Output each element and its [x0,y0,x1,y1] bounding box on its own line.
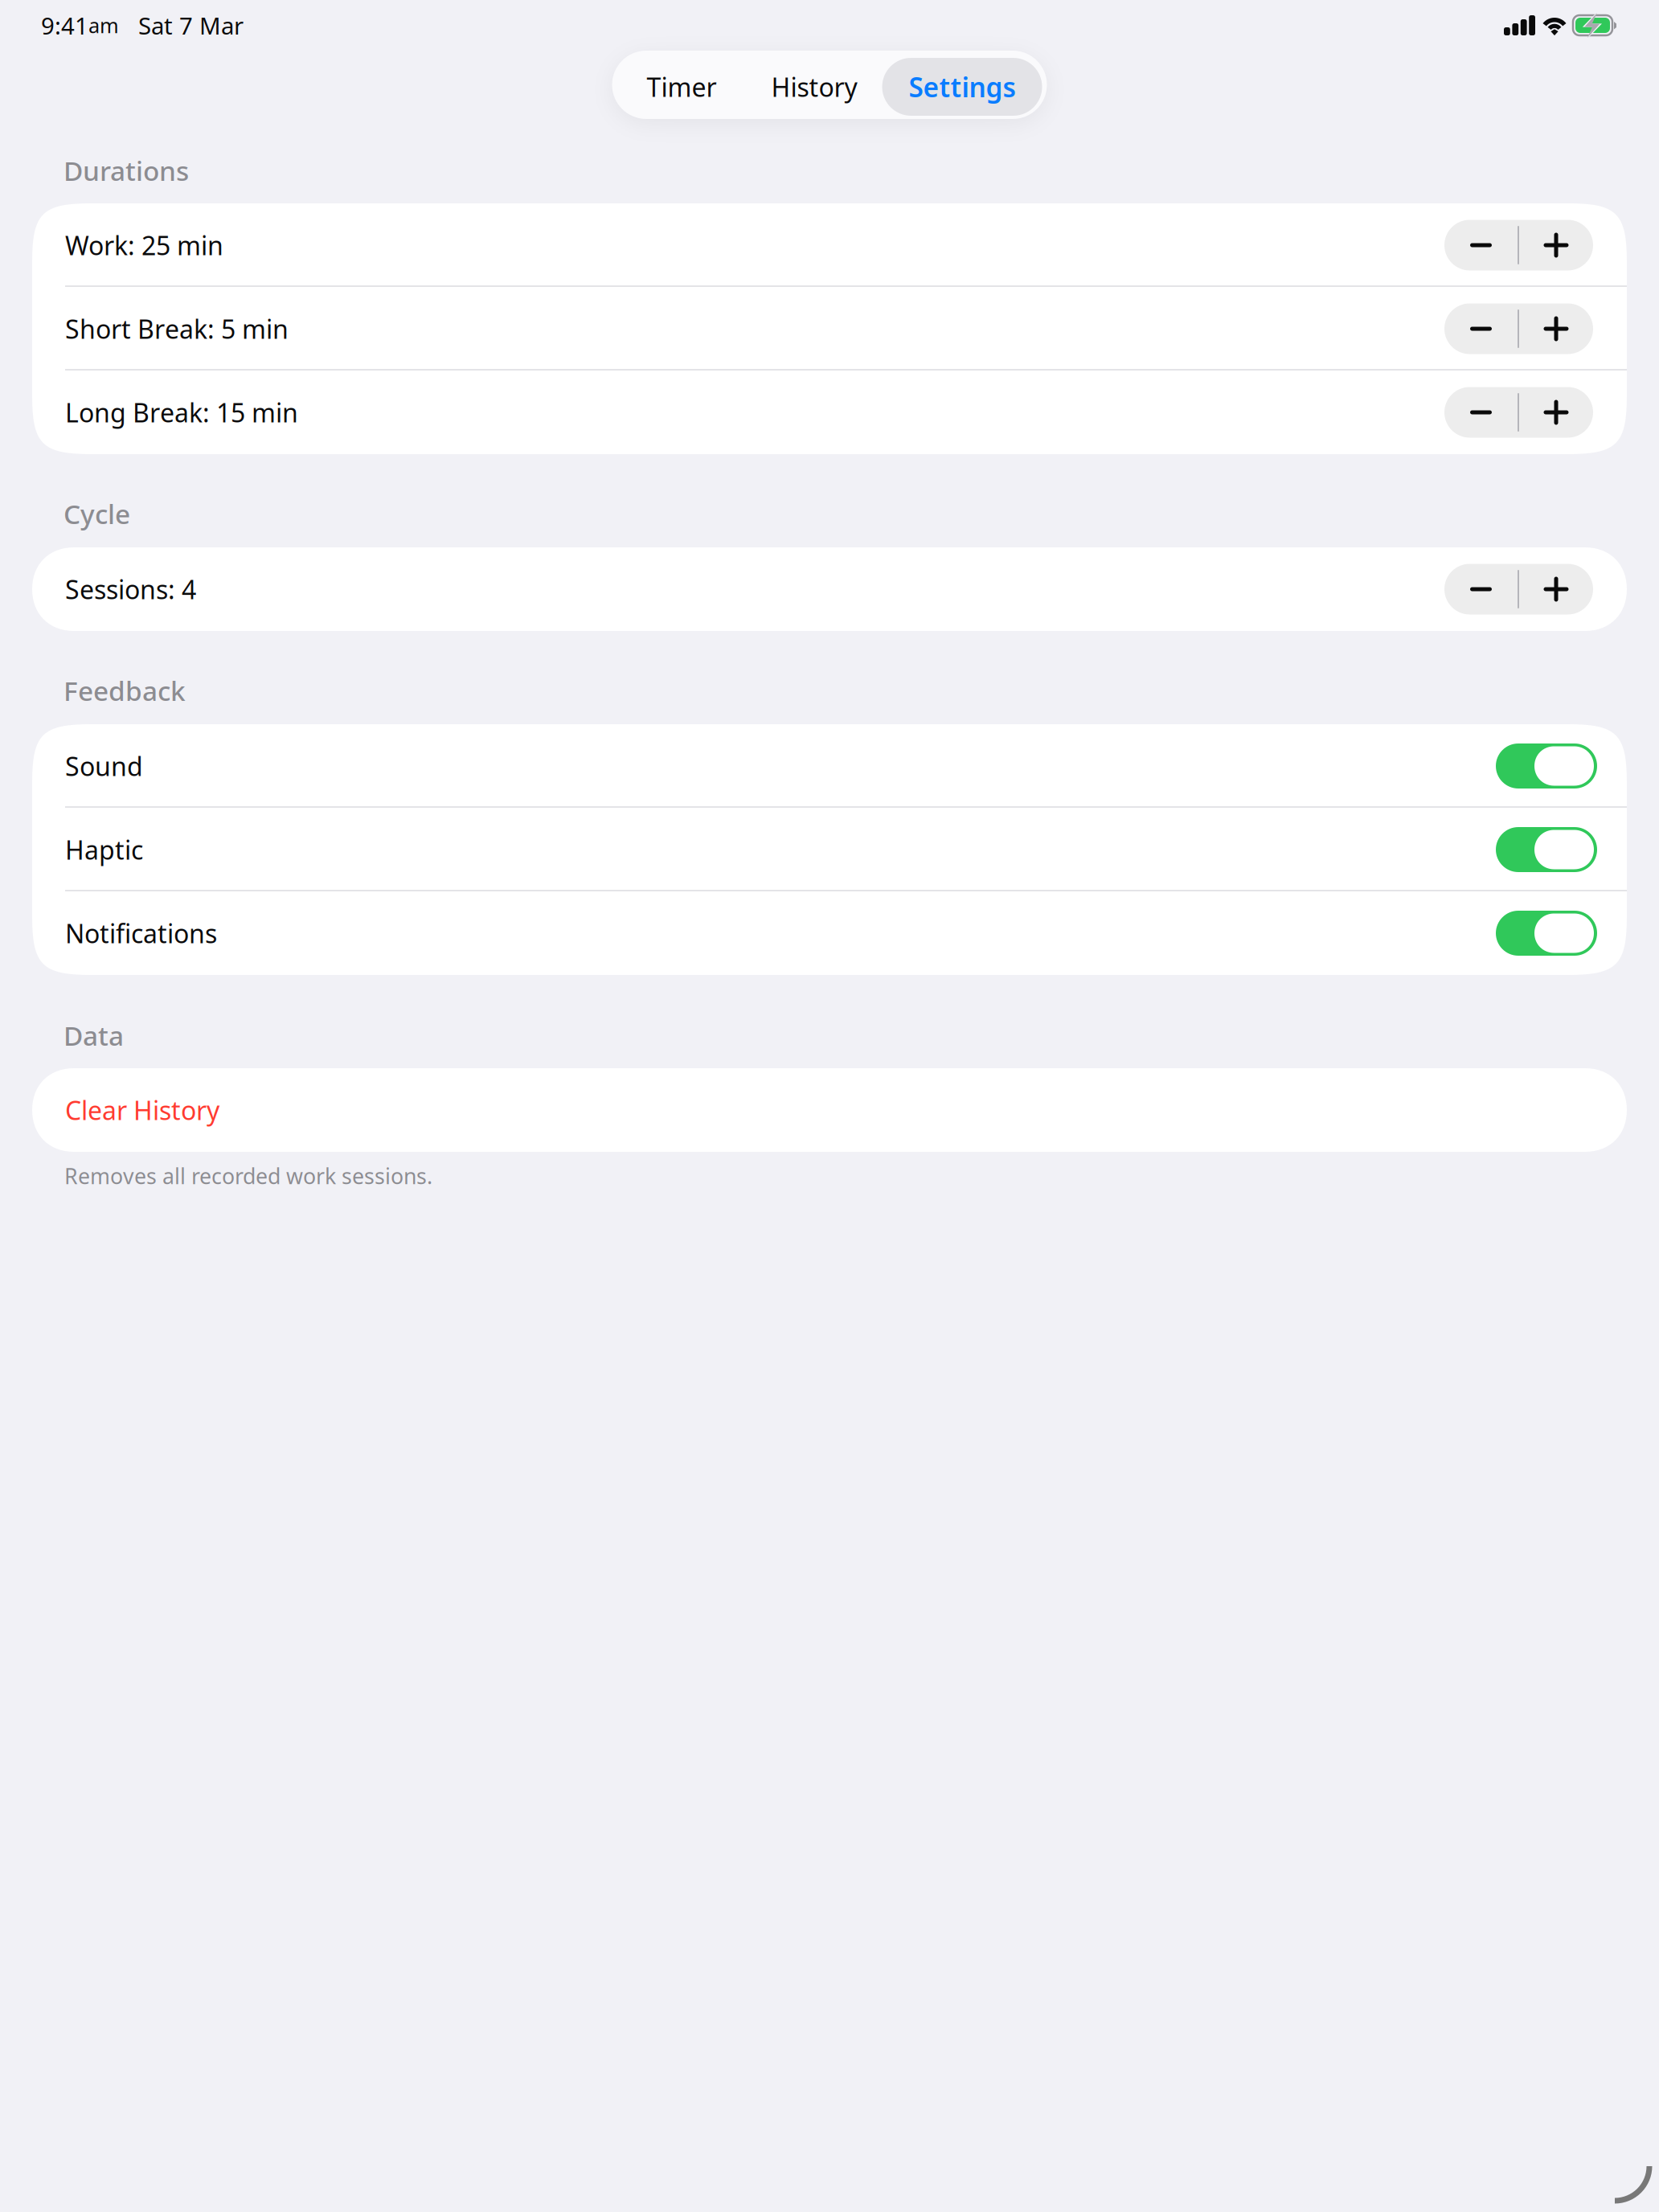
staticText: Settings [909,69,1016,105]
staticText: Cycle [63,496,130,531]
staticText: Sound [65,749,143,783]
button[interactable]: Timer [617,58,746,116]
staticText: Short Break: 5 min [65,312,289,346]
staticText: History [771,70,857,104]
staticText: 9:41 [41,10,88,41]
button[interactable]: History [746,58,882,116]
button[interactable]: Haptic [1496,827,1597,872]
button[interactable]: Increase Short Break: 5 min [1519,303,1593,354]
button[interactable]: Increase Long Break: 15 min [1519,387,1593,438]
staticText: Long Break: 15 min [65,395,298,429]
button[interactable]: Clear History [32,1068,1627,1152]
staticText: Sat 7 Mar [119,10,244,41]
staticText: Clear History [65,1093,219,1127]
staticText: Durations [63,153,189,188]
staticText: Feedback [63,673,186,708]
button[interactable]: Sound [1496,743,1597,789]
button[interactable]: Notifications [1496,911,1597,956]
staticText: Timer [647,70,717,104]
staticText: Haptic [65,833,143,867]
button[interactable]: Decrease Short Break: 5 min [1444,303,1518,354]
staticText: am [88,12,119,39]
staticText: Work: 25 min [65,228,223,262]
staticText: Notifications [65,916,217,950]
staticText: Data [63,1018,124,1053]
button[interactable]: Increase Work: 25 min [1519,220,1593,270]
staticText: Removes all recorded work sessions. [64,1162,432,1190]
button[interactable]: Decrease Long Break: 15 min [1444,387,1518,438]
button[interactable]: Increase Sessions: 4 [1519,564,1593,614]
button[interactable]: Settings [882,58,1042,116]
staticText: Sessions: 4 [65,572,196,606]
button[interactable]: Decrease Sessions: 4 [1444,564,1518,614]
button[interactable]: Decrease Work: 25 min [1444,220,1518,270]
